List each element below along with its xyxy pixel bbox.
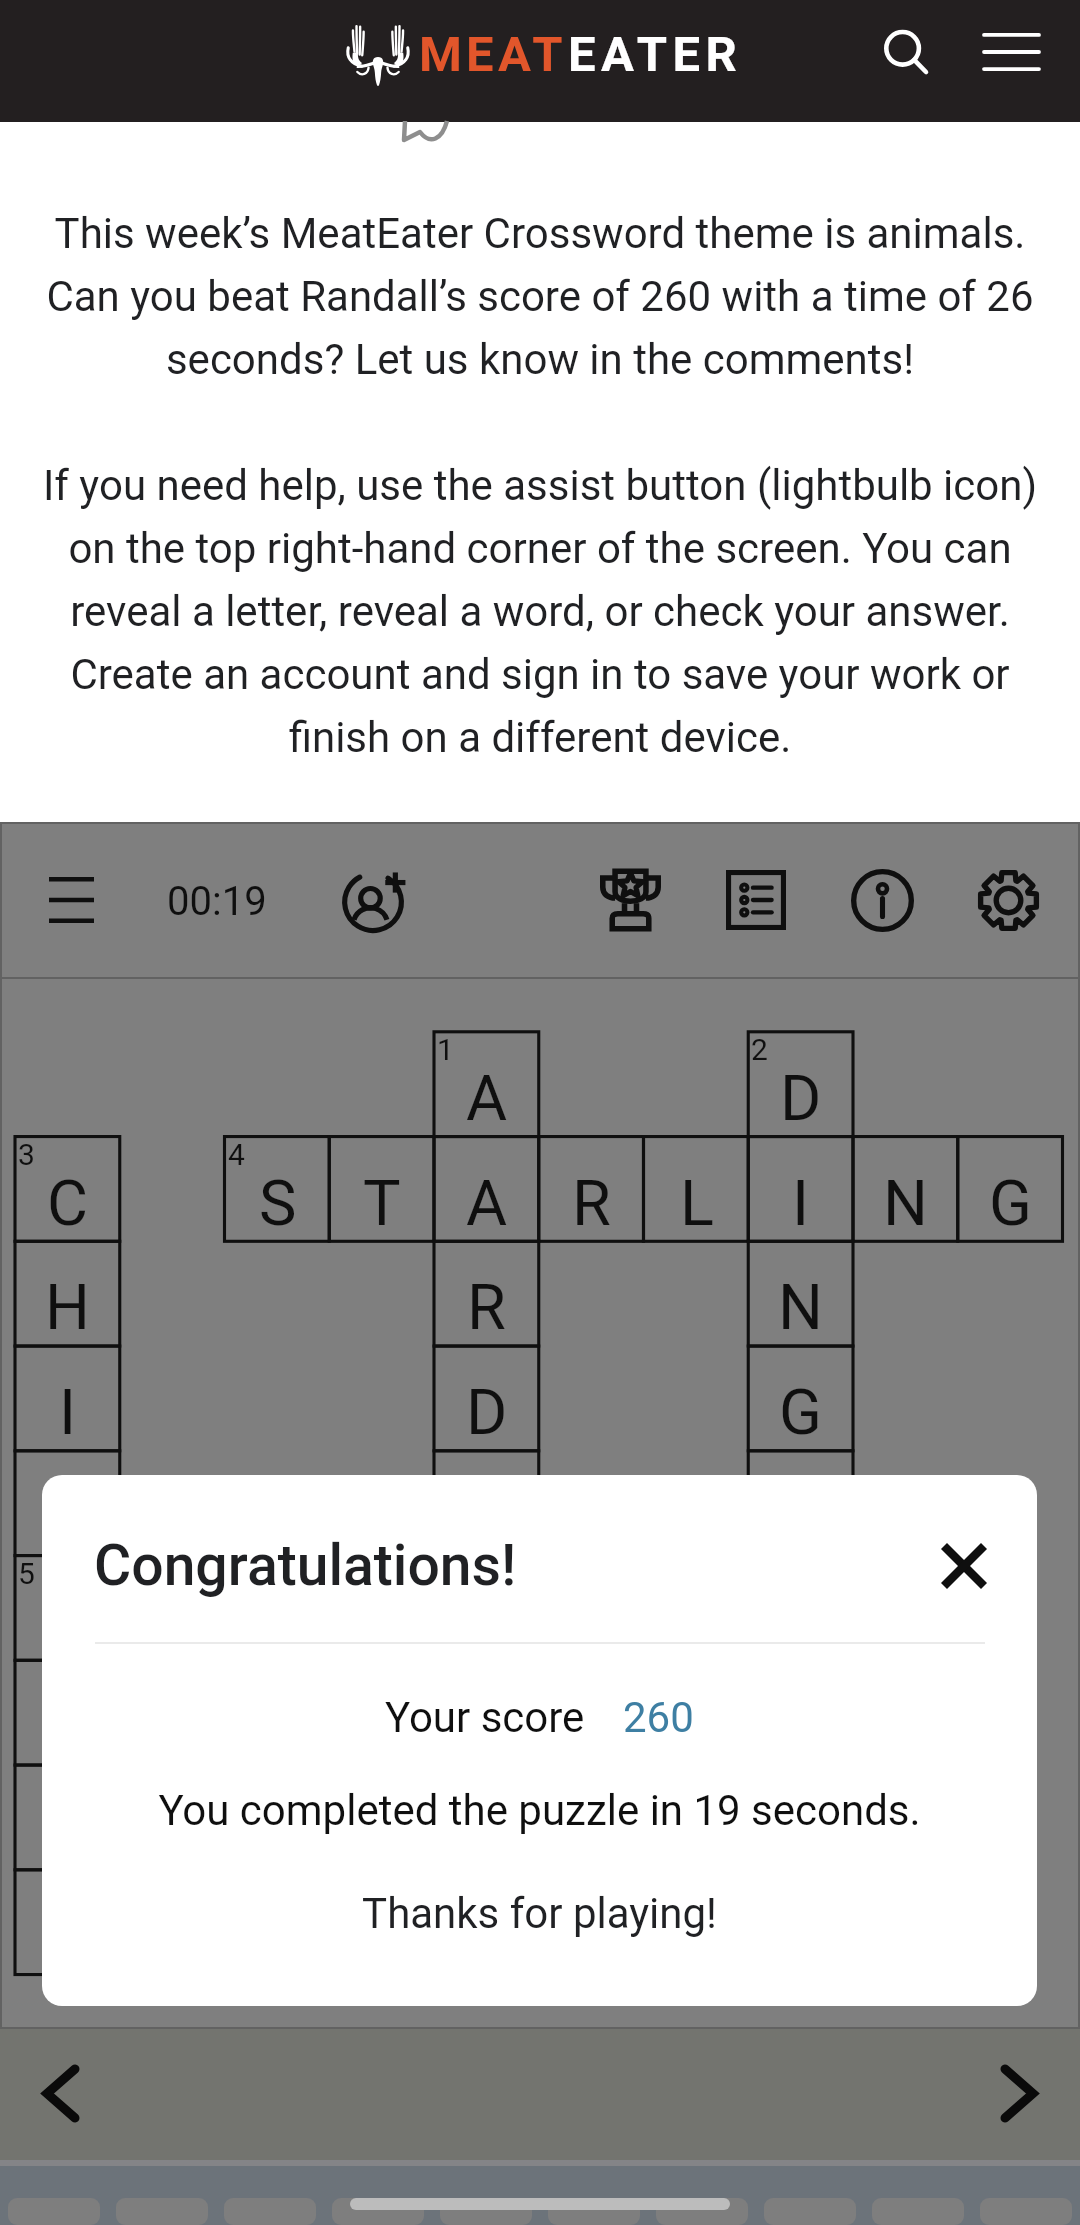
staticText: I (59, 1376, 77, 1450)
staticText: I (792, 1167, 810, 1241)
staticText: 00:19 (167, 878, 267, 925)
staticText: R (467, 1271, 506, 1345)
button[interactable]: S (225, 1137, 330, 1242)
button[interactable]: Menu (963, 6, 1059, 116)
staticText: Congratulations! (94, 1532, 517, 1599)
button[interactable]: L (644, 1137, 749, 1242)
button[interactable]: H (15, 1241, 120, 1346)
staticText: D (780, 1062, 822, 1136)
button[interactable] (434, 1451, 539, 1556)
button[interactable]: Next clue (974, 2048, 1064, 2138)
button[interactable]: N (853, 1137, 958, 1242)
staticText: Thanks for playing! (42, 1889, 1037, 1938)
button[interactable] (748, 1451, 853, 1556)
button[interactable]: Settings (960, 852, 1056, 948)
button[interactable]: Previous clue (16, 2048, 106, 2138)
button[interactable]: A (434, 1137, 539, 1242)
staticText: T (363, 1167, 401, 1241)
button[interactable]: Leaderboard (582, 852, 678, 948)
button[interactable]: I (748, 1137, 853, 1242)
staticText: N (778, 1271, 823, 1345)
staticText: 2 (751, 1032, 768, 1067)
staticText: G (989, 1167, 1032, 1241)
staticText: 4 (228, 1137, 245, 1172)
button[interactable]: G (958, 1137, 1063, 1242)
staticText: 5 (18, 1556, 35, 1591)
staticText: H (45, 1271, 90, 1345)
staticText: G (779, 1376, 822, 1450)
button[interactable]: Search (859, 6, 955, 116)
button[interactable]: I (15, 1346, 120, 1451)
staticText: S (259, 1167, 297, 1241)
button[interactable] (15, 1870, 120, 1975)
staticText: You completed the puzzle in 19 seconds. (42, 1786, 1037, 1835)
staticText: A (466, 1167, 508, 1241)
staticText: Your score (385, 1693, 585, 1742)
staticText: EATER (568, 26, 743, 83)
button[interactable]: Add player (327, 852, 423, 948)
button[interactable]: T (329, 1137, 434, 1242)
staticText: MEAT (419, 26, 567, 83)
staticText: N (883, 1167, 928, 1241)
staticText: R (572, 1167, 611, 1241)
staticText: A (466, 1062, 508, 1136)
button[interactable] (15, 1556, 120, 1661)
button[interactable]: N (748, 1241, 853, 1346)
staticText: This week’s MeatEater Crossword theme is… (30, 209, 1050, 762)
button[interactable]: D (748, 1032, 853, 1137)
staticText: L (680, 1167, 714, 1241)
staticText: C (47, 1167, 89, 1241)
staticText: 260 (623, 1693, 694, 1742)
button[interactable]: G (748, 1346, 853, 1451)
button[interactable]: D (434, 1346, 539, 1451)
button[interactable]: Menu (23, 852, 119, 948)
button[interactable]: Close (926, 1528, 1002, 1604)
button[interactable]: Clue list (708, 852, 804, 948)
button[interactable]: R (434, 1241, 539, 1346)
staticText: D (466, 1376, 508, 1450)
staticText: 3 (18, 1137, 35, 1172)
button[interactable] (15, 1451, 120, 1556)
button[interactable]: R (539, 1137, 644, 1242)
button[interactable] (15, 1765, 120, 1870)
button[interactable]: A (434, 1032, 539, 1137)
button[interactable]: C (15, 1137, 120, 1242)
button[interactable]: Info (834, 852, 930, 948)
button[interactable] (15, 1660, 120, 1765)
staticText: 1 (437, 1032, 454, 1067)
